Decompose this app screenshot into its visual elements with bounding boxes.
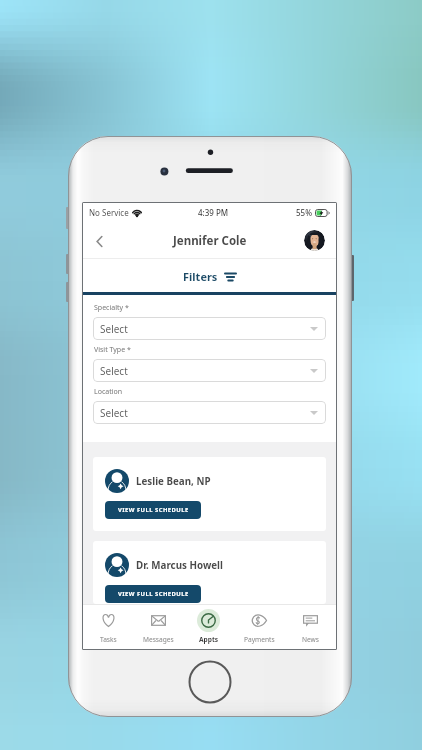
- staticText: Tasks: [100, 635, 117, 644]
- button[interactable]: Appts: [183, 604, 234, 649]
- button[interactable]: Tasks: [83, 604, 133, 649]
- staticText: Select: [100, 322, 128, 336]
- button[interactable]: Back: [86, 228, 112, 254]
- staticText: Appts: [199, 635, 219, 644]
- staticText: Messages: [143, 635, 174, 644]
- button[interactable]: Payments: [234, 604, 285, 649]
- button[interactable]: Leslie Bean, NP: [93, 457, 326, 531]
- button[interactable]: Messages: [133, 604, 183, 649]
- button[interactable]: VIEW FULL SCHEDULE: [105, 501, 201, 519]
- button[interactable]: News: [285, 604, 336, 649]
- staticText: News: [302, 635, 319, 644]
- staticText: VIEW FULL SCHEDULE: [118, 506, 189, 514]
- staticText: 55%: [296, 207, 312, 218]
- staticText: No Service: [89, 207, 129, 218]
- button[interactable]: Select: [93, 401, 326, 424]
- staticText: Jennifer Cole: [173, 233, 247, 249]
- staticText: Location: [94, 387, 123, 397]
- staticText: Select: [100, 364, 128, 378]
- staticText: Payments: [244, 635, 275, 644]
- staticText: VIEW FULL SCHEDULE: [118, 590, 189, 598]
- staticText: Select: [100, 406, 128, 420]
- button[interactable]: Select: [93, 317, 326, 340]
- staticText: 4:39 PM: [198, 207, 229, 218]
- button[interactable]: Profile: [304, 230, 325, 251]
- button[interactable]: VIEW FULL SCHEDULE: [105, 585, 201, 603]
- button[interactable]: Dr. Marcus Howell: [93, 541, 326, 604]
- staticText: Dr. Marcus Howell: [136, 559, 223, 572]
- button[interactable]: Select: [93, 359, 326, 382]
- staticText: Filters: [183, 269, 218, 284]
- staticText: Visit Type *: [94, 345, 131, 355]
- button[interactable]: Filters: [83, 259, 336, 295]
- staticText: Leslie Bean, NP: [136, 475, 211, 488]
- staticText: Specialty *: [94, 303, 129, 313]
